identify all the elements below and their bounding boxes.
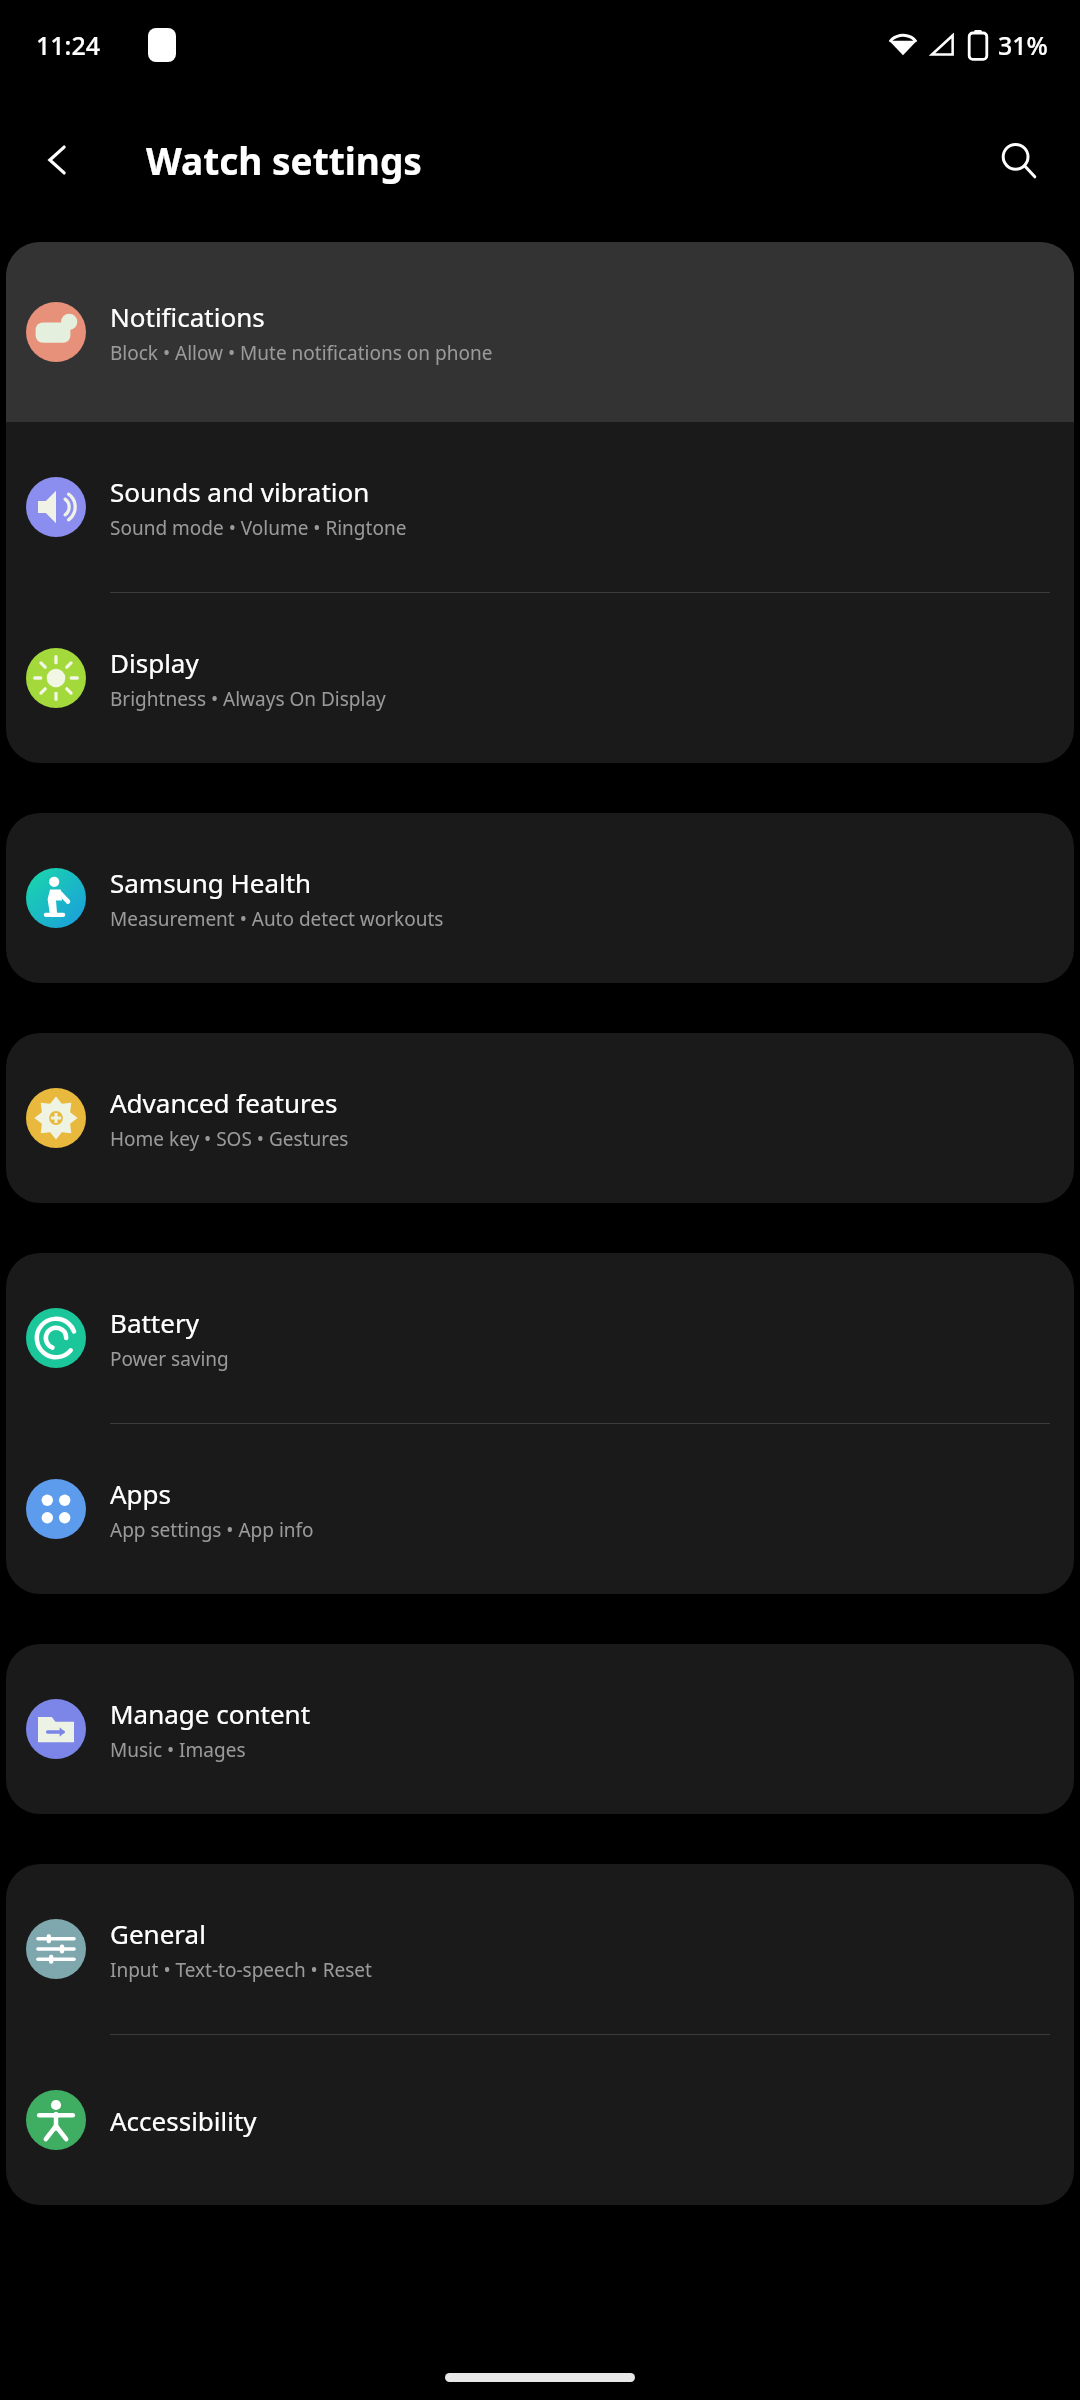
- staticText: General: [110, 1916, 206, 1951]
- staticText: Battery: [110, 1305, 199, 1340]
- staticText: 31%: [998, 28, 1048, 62]
- staticText: Home key • SOS • Gestures: [110, 1126, 349, 1152]
- staticText: Accessibility: [110, 2103, 257, 2138]
- button[interactable]: Notifications: [6, 242, 1074, 422]
- staticText: Brightness • Always On Display: [110, 686, 386, 712]
- staticText: Block • Allow • Mute notifications on ph…: [110, 340, 493, 366]
- staticText: Input • Text-to-speech • Reset: [110, 1957, 372, 1983]
- staticText: Sounds and vibration: [110, 474, 370, 509]
- button[interactable]: Samsung Health: [6, 813, 1074, 983]
- staticText: Watch settings: [146, 135, 422, 185]
- button[interactable]: Accessibility: [6, 2035, 1074, 2205]
- button[interactable]: Display: [6, 593, 1074, 763]
- staticText: Display: [110, 645, 199, 680]
- button[interactable]: Manage content: [6, 1644, 1074, 1814]
- staticText: Samsung Health: [110, 865, 312, 900]
- staticText: 11:24: [36, 28, 101, 62]
- button[interactable]: Battery: [6, 1253, 1074, 1423]
- staticText: Power saving: [110, 1346, 229, 1372]
- staticText: Manage content: [110, 1696, 311, 1731]
- button[interactable]: Sounds and vibration: [6, 422, 1074, 592]
- staticText: Apps: [110, 1476, 172, 1511]
- button[interactable]: Back: [30, 132, 86, 188]
- staticText: Music • Images: [110, 1737, 246, 1763]
- button[interactable]: General: [6, 1864, 1074, 2034]
- staticText: Measurement • Auto detect workouts: [110, 906, 444, 932]
- button[interactable]: Search: [988, 130, 1048, 190]
- staticText: App settings • App info: [110, 1517, 314, 1543]
- button[interactable]: Apps: [6, 1424, 1074, 1594]
- staticText: Advanced features: [110, 1085, 338, 1120]
- staticText: Sound mode • Volume • Ringtone: [110, 515, 407, 541]
- staticText: Notifications: [110, 299, 265, 334]
- button[interactable]: Advanced features: [6, 1033, 1074, 1203]
